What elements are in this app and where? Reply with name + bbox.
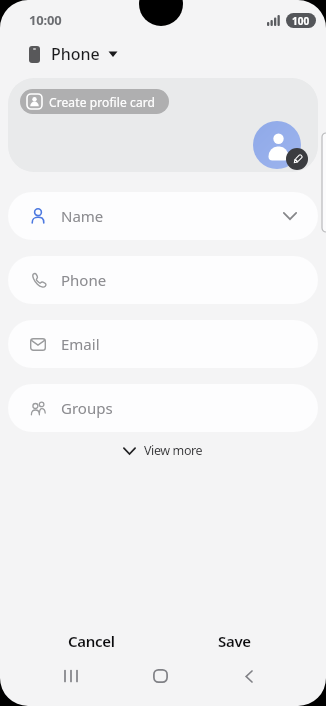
button[interactable]: Phone	[27, 43, 120, 65]
staticText: Email	[61, 334, 100, 354]
button[interactable]: Email	[8, 320, 318, 368]
staticText: Name	[61, 206, 104, 226]
button[interactable]	[47, 662, 95, 690]
button[interactable]: Phone	[8, 256, 318, 304]
staticText: 10:00	[29, 11, 62, 29]
staticText: 100	[292, 14, 310, 28]
staticText: Create profile card	[49, 94, 156, 110]
staticText: Phone	[61, 270, 107, 290]
staticText: Phone	[51, 43, 100, 65]
staticText: View more	[144, 442, 203, 459]
staticText: Cancel	[68, 631, 115, 651]
button[interactable]	[136, 662, 184, 690]
button[interactable]: Name	[8, 192, 318, 240]
button[interactable]	[286, 148, 308, 170]
button[interactable]	[225, 662, 273, 690]
staticText: Groups	[61, 398, 113, 418]
button[interactable]: Groups	[8, 384, 318, 432]
button[interactable]: Create profile card	[20, 89, 169, 114]
button[interactable]: Cancel	[0, 620, 163, 662]
button[interactable]: View more	[115, 434, 211, 467]
staticText: Save	[218, 631, 251, 651]
button[interactable]: Save	[163, 620, 326, 662]
button[interactable]	[253, 121, 301, 169]
